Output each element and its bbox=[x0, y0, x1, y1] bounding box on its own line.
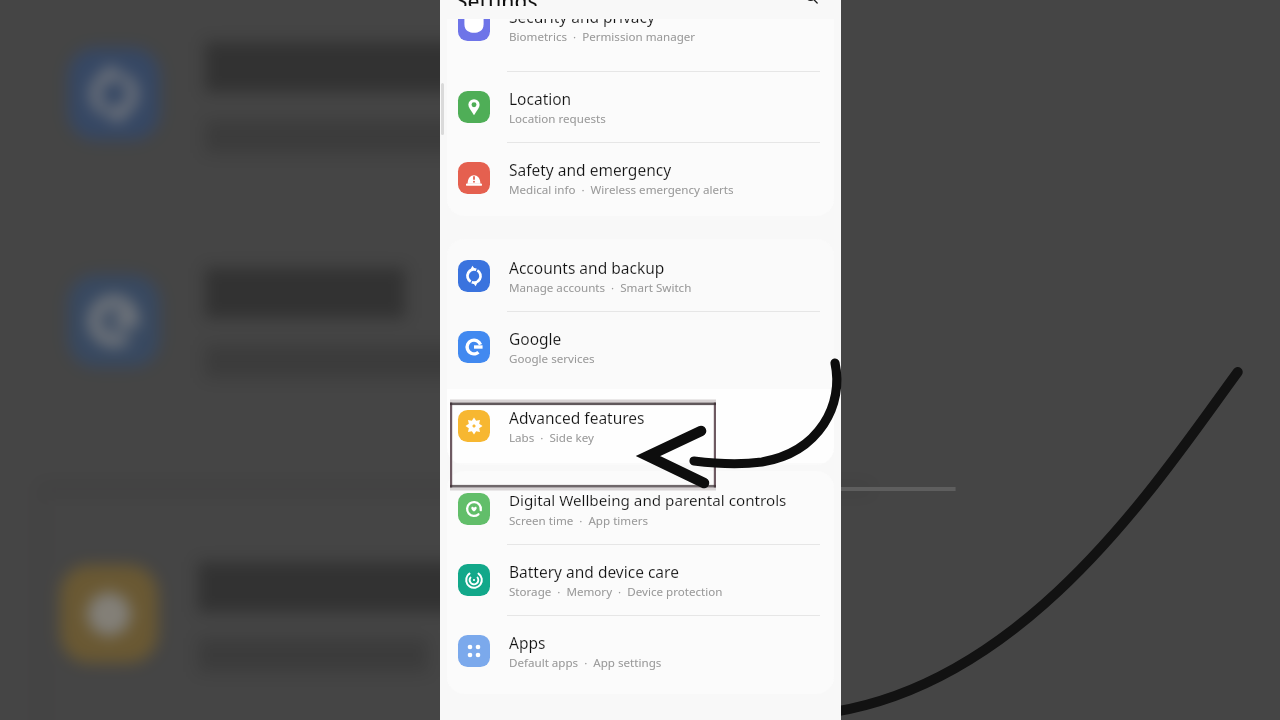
button[interactable]: Location bbox=[447, 72, 834, 142]
staticText: Medical info · Wireless emergency alerts bbox=[509, 182, 734, 198]
button[interactable]: Safety and emergency bbox=[447, 143, 834, 213]
staticText: Labs · Side key bbox=[509, 430, 594, 446]
staticText: Biometrics · Permission manager bbox=[509, 29, 696, 45]
staticText: Security and privacy bbox=[509, 19, 655, 27]
staticText: Digital Wellbeing and parental controls bbox=[509, 490, 787, 511]
button[interactable]: Search bbox=[795, 0, 829, 5]
button[interactable]: Advanced features bbox=[447, 389, 834, 463]
staticText: Location requests bbox=[509, 111, 606, 127]
staticText: Manage accounts · Smart Switch bbox=[509, 280, 692, 296]
button[interactable]: Digital Wellbeing and parental controls bbox=[447, 474, 834, 544]
button[interactable]: Battery and device care bbox=[447, 545, 834, 615]
staticText: Default apps · App settings bbox=[509, 655, 662, 671]
staticText: Battery and device care bbox=[509, 561, 679, 582]
staticText: Location bbox=[509, 88, 572, 109]
staticText: Google bbox=[509, 328, 562, 349]
staticText: Settings bbox=[456, 0, 538, 6]
staticText: Safety and emergency bbox=[509, 159, 672, 180]
button[interactable]: Security and privacy bbox=[447, 19, 834, 51]
staticText: Apps bbox=[509, 632, 546, 653]
staticText: Google services bbox=[509, 351, 595, 367]
button[interactable]: Accounts and backup bbox=[447, 241, 834, 311]
button[interactable]: Google bbox=[447, 312, 834, 382]
button[interactable]: Apps bbox=[447, 616, 834, 686]
staticText: Storage · Memory · Device protection bbox=[509, 584, 723, 600]
staticText: Advanced features bbox=[509, 407, 645, 428]
staticText: Accounts and backup bbox=[509, 257, 665, 278]
staticText: Screen time · App timers bbox=[509, 513, 649, 529]
